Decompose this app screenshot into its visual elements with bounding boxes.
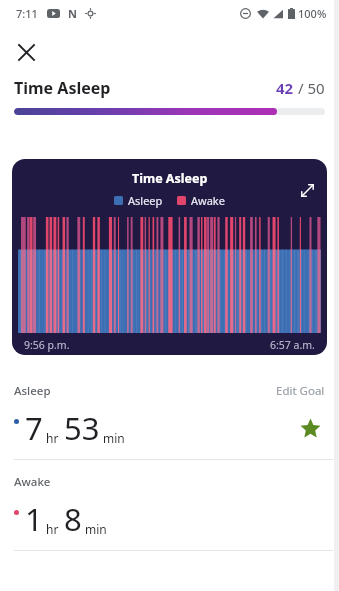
button[interactable]: Goal met bbox=[295, 413, 325, 443]
staticText: Asleep bbox=[128, 193, 163, 208]
staticText: 53 bbox=[64, 407, 100, 449]
staticText: min bbox=[85, 521, 107, 537]
staticText: Awake bbox=[14, 474, 51, 490]
staticText: Edit Goal bbox=[276, 383, 325, 399]
staticText: 42 bbox=[276, 78, 294, 98]
staticText: N bbox=[68, 6, 77, 21]
staticText: hr bbox=[46, 521, 59, 537]
staticText: Time Asleep bbox=[14, 77, 111, 99]
staticText: 8 bbox=[64, 498, 82, 540]
staticText: 7:11 bbox=[16, 6, 38, 21]
button[interactable]: Edit Goal bbox=[276, 383, 325, 399]
staticText: 6:57 a.m. bbox=[270, 338, 315, 352]
staticText: Time Asleep bbox=[132, 170, 208, 187]
button[interactable]: Time Asleep bbox=[12, 159, 327, 355]
button[interactable]: Close bbox=[9, 35, 43, 69]
staticText: min bbox=[103, 430, 125, 446]
staticText: Asleep bbox=[14, 383, 51, 399]
staticText: Awake bbox=[191, 193, 225, 208]
button[interactable]: Expand chart bbox=[293, 176, 321, 204]
staticText: 9:56 p.m. bbox=[24, 338, 70, 352]
staticText: 100% bbox=[298, 6, 327, 21]
staticText: / 50 bbox=[294, 78, 325, 98]
staticText: 7 bbox=[25, 407, 43, 449]
staticText: hr bbox=[46, 430, 59, 446]
staticText: 1 bbox=[25, 498, 43, 540]
